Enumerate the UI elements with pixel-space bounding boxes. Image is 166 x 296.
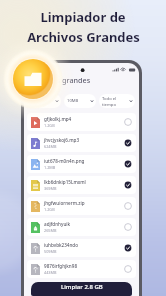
button[interactable]: Deselect file xyxy=(124,139,132,147)
staticText: 509MB xyxy=(44,249,57,254)
button[interactable]: jhvcjyskoj6.mp3 xyxy=(27,134,136,152)
button[interactable]: 9876irfghjkn98 xyxy=(27,260,136,278)
staticText: lkb6dnkip15Lmxml xyxy=(44,179,86,185)
staticText: iut678-m0n4n.png xyxy=(44,158,85,164)
button[interactable]: Deselect file xyxy=(124,244,132,252)
button[interactable]: adjfdnhyuik xyxy=(27,218,136,236)
button[interactable]: Select file xyxy=(124,202,132,210)
staticText: 10MB xyxy=(67,98,79,104)
staticText: Tipos xyxy=(31,98,42,104)
staticText: Limpiador de xyxy=(40,8,126,26)
staticText: 1.2GB xyxy=(44,123,55,128)
button[interactable]: Select file xyxy=(124,265,132,273)
staticText: 1.2GB xyxy=(44,207,55,212)
button[interactable]: gfjkolkj.mp4 xyxy=(27,113,136,131)
staticText: 1.2MB xyxy=(44,165,56,170)
button[interactable]: Tipos xyxy=(28,94,61,108)
staticText: gfjkolkj.mp4 xyxy=(44,116,72,122)
staticText: 369MB xyxy=(44,186,57,191)
button[interactable]: Deselect file xyxy=(124,181,132,189)
button[interactable]: Limpiar 2.8 GB xyxy=(31,282,132,296)
button[interactable]: Deselect file xyxy=(124,160,132,168)
staticText: jhgfwuiornerm.zip xyxy=(44,200,85,206)
button[interactable]: Select file xyxy=(124,118,132,126)
button[interactable]: lkb6dnkip15Lmxml xyxy=(27,176,136,194)
button[interactable]: jhgfwuiornerm.zip xyxy=(27,197,136,215)
staticText: 265MB xyxy=(44,228,57,233)
staticText: 624MB xyxy=(44,144,57,149)
button[interactable]: iuhbvbk234ndo xyxy=(27,239,136,257)
button[interactable]: 10MB xyxy=(64,94,96,108)
button[interactable]: Todo el tiempo xyxy=(99,94,135,108)
staticText: adjfdnhyuik xyxy=(44,221,71,227)
staticText: Limpiar 2.8 GB xyxy=(61,283,103,291)
button[interactable]: Select file xyxy=(124,223,132,231)
staticText: 443MB xyxy=(44,270,57,275)
button[interactable]: iut678-m0n4n.png xyxy=(27,155,136,173)
staticText: Archivos Grandes xyxy=(27,28,140,46)
staticText: Archivos grandes xyxy=(31,75,91,85)
staticText: jhvcjyskoj6.mp3 xyxy=(44,137,80,143)
staticText: iuhbvbk234ndo xyxy=(44,242,79,248)
staticText: Todo el tiempo xyxy=(102,96,117,107)
staticText: 9876irfghjkn98 xyxy=(44,263,78,269)
